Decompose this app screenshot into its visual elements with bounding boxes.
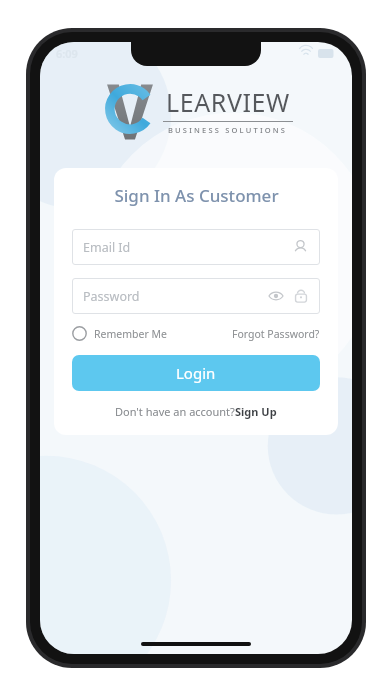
- staticText: BUSINESS SOLUTIONS: [168, 125, 288, 135]
- staticText: 6:09: [56, 46, 78, 61]
- button[interactable]: Sign Up: [235, 404, 277, 419]
- staticText: Email Id: [83, 239, 131, 256]
- staticText: Login: [176, 363, 216, 383]
- button[interactable]: Remember Me: [72, 326, 167, 341]
- button[interactable]: Login: [72, 355, 320, 391]
- button[interactable]: Password: [72, 278, 320, 314]
- staticText: Sign In As Customer: [114, 184, 279, 207]
- button[interactable]: Forgot Password?: [232, 327, 320, 341]
- button[interactable]: Show password: [265, 285, 287, 307]
- staticText: Don't have an account?: [115, 404, 235, 419]
- staticText: LEARVIEW: [166, 85, 290, 119]
- staticText: Remember Me: [94, 327, 167, 341]
- button[interactable]: Email Id: [72, 229, 320, 265]
- staticText: Password: [83, 288, 140, 305]
- staticText: Sign Up: [235, 404, 277, 419]
- staticText: Forgot Password?: [232, 327, 320, 341]
